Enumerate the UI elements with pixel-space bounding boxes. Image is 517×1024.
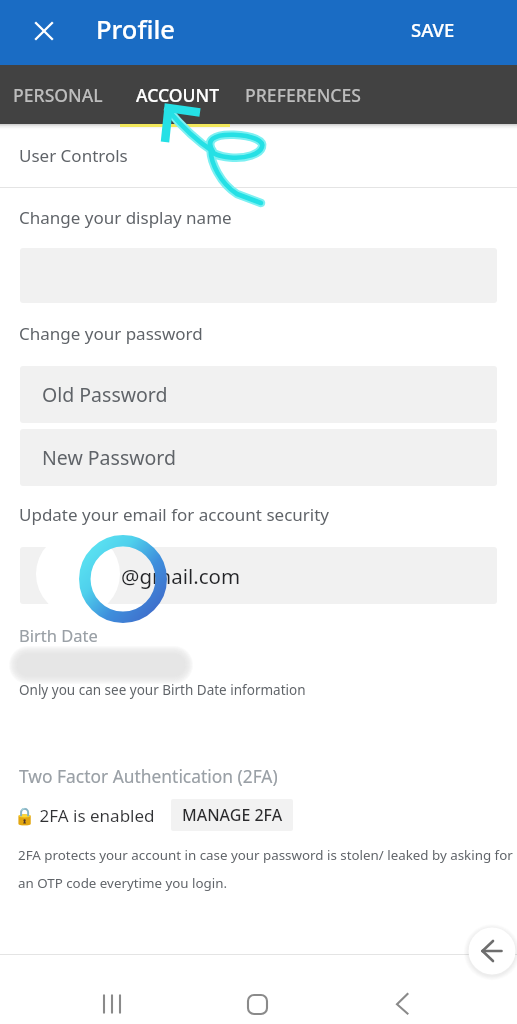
staticText: Profile [96, 12, 175, 47]
staticText: Old Password [42, 381, 168, 408]
button[interactable]: Back [468, 927, 516, 975]
staticText: MANAGE 2FA [182, 804, 283, 826]
button[interactable]: MANAGE 2FA [171, 799, 293, 831]
button[interactable]: Old Password [20, 366, 497, 423]
staticText: SAVE [411, 17, 455, 42]
button[interactable]: Close [23, 10, 65, 52]
button[interactable]: PERSONAL [13, 65, 103, 124]
staticText: @gmail.com [121, 562, 241, 590]
button[interactable]: PREFERENCES [245, 65, 361, 124]
staticText: Update your email for account security [19, 503, 330, 526]
staticText: User Controls [19, 144, 128, 167]
staticText: Birth Date [19, 624, 98, 646]
staticText: Only you can see your Birth Date informa… [19, 681, 306, 699]
staticText: PERSONAL [13, 83, 103, 107]
staticText: 🔒 2FA is enabled [14, 804, 155, 827]
button[interactable] [20, 547, 497, 604]
staticText: 2FA protects your account in case your p… [18, 846, 517, 892]
button[interactable]: ACCOUNT [136, 65, 220, 124]
staticText: New Password [42, 444, 177, 471]
button[interactable]: Recent apps [88, 980, 136, 1024]
button[interactable]: Back [378, 980, 426, 1024]
button[interactable]: Home [233, 980, 281, 1024]
staticText: Two Factor Authentication (2FA) [19, 764, 278, 788]
button[interactable]: SAVE [399, 12, 467, 47]
button[interactable]: New Password [20, 429, 497, 486]
staticText: ACCOUNT [136, 83, 220, 107]
staticText: PREFERENCES [245, 83, 361, 107]
staticText: Change your display name [19, 206, 232, 229]
staticText: Change your password [19, 322, 203, 345]
